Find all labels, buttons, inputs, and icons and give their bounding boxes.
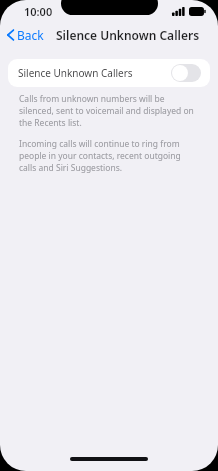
staticText: Silence Unknown Callers	[56, 27, 200, 43]
staticText: Silence Unknown Callers	[18, 66, 133, 80]
button[interactable]: Silence Unknown Callers toggle	[171, 64, 201, 82]
staticText: Back	[17, 27, 44, 43]
staticText: Incoming calls will continue to ring fro…	[19, 138, 199, 174]
staticText: Calls from unknown numbers will be silen…	[19, 93, 199, 129]
button[interactable]: Back	[0, 24, 50, 46]
staticText: 10:00	[24, 4, 53, 19]
button[interactable]: Silence Unknown Callers	[8, 59, 210, 87]
